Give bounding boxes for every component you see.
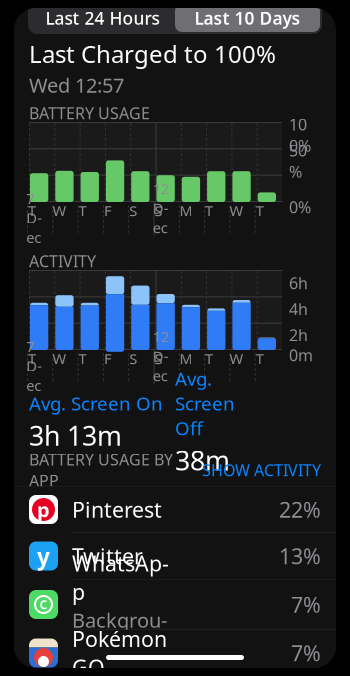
staticText: W <box>52 349 66 368</box>
staticText: S <box>129 349 137 368</box>
staticText: 7 Dec <box>26 188 42 266</box>
button[interactable]: Last 24 Hours <box>30 4 175 32</box>
staticText: W <box>52 201 66 220</box>
button[interactable]: C <box>14 579 336 630</box>
staticText: 12 Dec <box>153 327 169 424</box>
button[interactable]: y <box>14 533 336 579</box>
staticText: F <box>104 349 112 368</box>
staticText: F <box>104 201 112 220</box>
staticText: S <box>154 201 162 220</box>
staticText: ACTIVITY <box>29 250 96 272</box>
button[interactable]: SHOW ACTIVITY <box>202 459 321 481</box>
staticText: T <box>205 201 213 220</box>
staticText: 3h 13m <box>29 418 122 453</box>
staticText: W <box>230 201 244 220</box>
staticText: T <box>79 349 87 368</box>
staticText: BATTERY USAGE <box>29 102 150 124</box>
staticText: W <box>230 349 244 368</box>
staticText: 38m <box>175 442 230 478</box>
staticText: 6h <box>289 272 308 294</box>
staticText: 7 Dec <box>26 336 42 414</box>
staticText: 2h <box>289 324 308 346</box>
staticText: SHOW ACTIVITY <box>202 459 321 481</box>
staticText: T <box>28 349 36 368</box>
button[interactable]: Last 10 Days <box>175 4 320 32</box>
staticText: Avg. Screen On <box>29 391 163 416</box>
staticText: M <box>179 349 192 368</box>
button[interactable]: Pokémon GO <box>14 630 336 676</box>
staticText: Last 10 Days <box>194 6 300 29</box>
staticText: 7% <box>291 590 321 619</box>
staticText: 22% <box>279 495 321 524</box>
staticText: Pokémon GO <box>72 625 167 676</box>
staticText: Last 24 Hours <box>45 6 159 29</box>
staticText: S <box>154 349 162 368</box>
staticText: C <box>39 596 47 612</box>
staticText: T <box>205 349 213 368</box>
staticText: Last Charged to 100% <box>29 38 276 70</box>
staticText: WhatsApp <box>72 549 169 606</box>
staticText: 100% <box>289 114 311 156</box>
staticText: 12 Dec <box>153 179 169 276</box>
staticText: Pinterest <box>72 495 162 524</box>
staticText: Background Activity <box>72 607 168 660</box>
staticText: 7% <box>291 639 321 667</box>
staticText: y <box>37 541 50 571</box>
staticText: 13% <box>279 542 321 570</box>
staticText: Wed 12:57 <box>29 72 124 98</box>
staticText: T <box>256 349 264 368</box>
staticText: Avg. Screen Off <box>175 366 235 440</box>
button[interactable]: p <box>14 486 336 533</box>
staticText: T <box>79 201 87 220</box>
staticText: 50% <box>289 140 307 182</box>
staticText: 0% <box>289 196 311 218</box>
staticText: Twitter <box>72 542 143 570</box>
staticText: 4h <box>289 298 308 320</box>
staticText: 0m <box>289 344 313 366</box>
staticText: p <box>37 496 50 523</box>
staticText: BATTERY USAGE BY APP <box>29 449 173 491</box>
staticText: T <box>28 201 36 220</box>
staticText: S <box>129 201 137 220</box>
staticText: M <box>179 201 192 220</box>
staticText: T <box>256 201 264 220</box>
